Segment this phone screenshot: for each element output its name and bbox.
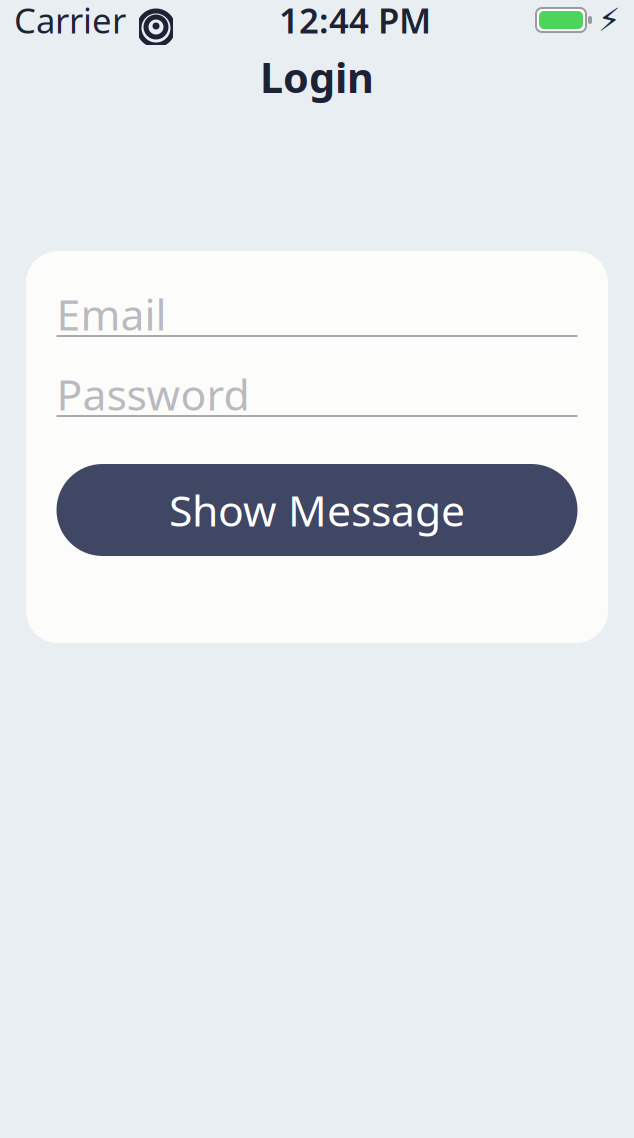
staticText: ⚡︎	[598, 2, 620, 38]
button[interactable]: Show Message	[56, 464, 577, 556]
staticText: Email	[56, 286, 166, 342]
staticText: Show Message	[169, 482, 465, 538]
staticText: Carrier	[14, 0, 126, 43]
staticText: 12:44 PM	[279, 0, 431, 43]
staticText: Password	[56, 366, 249, 422]
staticText: Login	[260, 50, 374, 104]
